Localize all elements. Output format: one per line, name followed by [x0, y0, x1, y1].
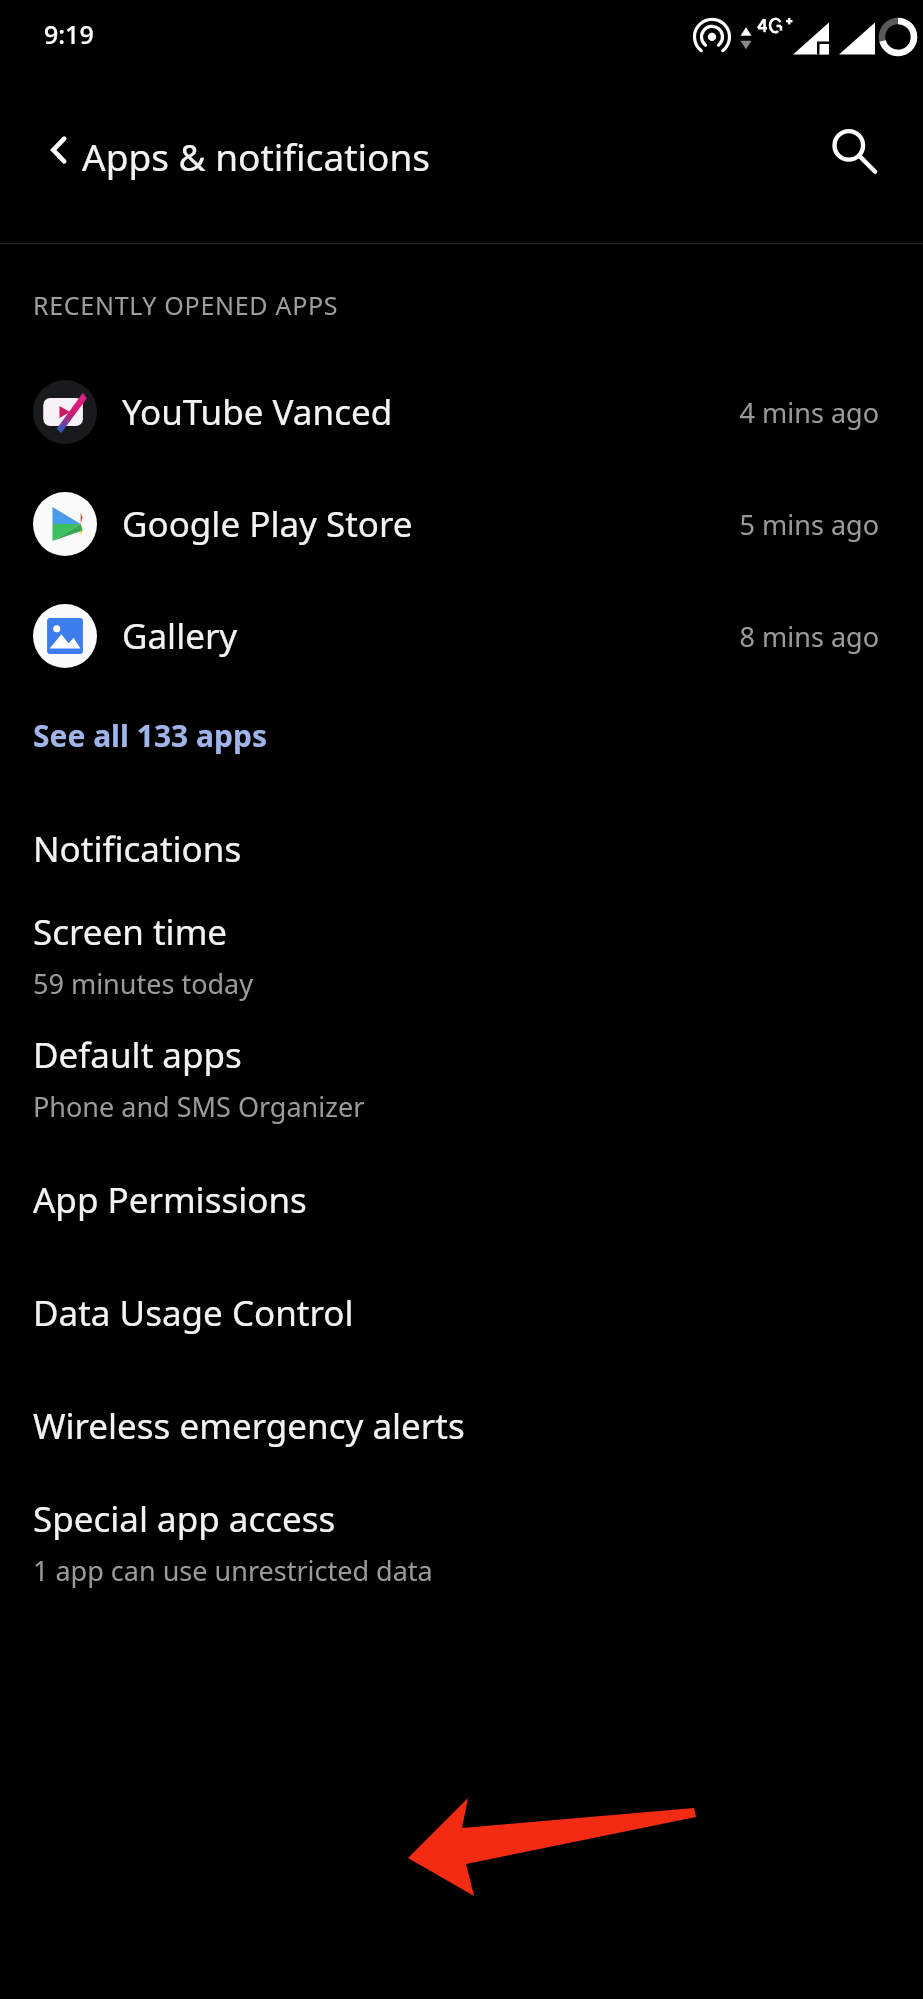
staticText: Phone and SMS Organizer — [33, 1088, 365, 1125]
button[interactable]: Back — [22, 112, 98, 188]
staticText: 59 minutes today — [33, 965, 254, 1002]
staticText: 9:19 — [44, 17, 94, 51]
staticText: 8 mins ago — [739, 618, 879, 655]
staticText: 4 mins ago — [739, 394, 879, 431]
staticText: 5 mins ago — [739, 506, 879, 543]
staticText: App Permissions — [33, 1176, 307, 1224]
button[interactable]: Wireless emergency alerts — [0, 1369, 923, 1482]
staticText: YouTube Vanced — [122, 388, 393, 436]
button[interactable]: Google Play Store — [0, 468, 923, 580]
staticText: Gallery — [122, 612, 238, 660]
button[interactable]: Gallery — [0, 580, 923, 692]
button[interactable]: Notifications — [0, 800, 923, 897]
staticText: See all 133 apps — [33, 715, 268, 756]
button[interactable]: Default apps — [0, 1012, 923, 1144]
button[interactable]: See all 133 apps — [33, 715, 268, 756]
staticText: Google Play Store — [122, 500, 413, 548]
button[interactable]: App Permissions — [0, 1144, 923, 1256]
button[interactable]: Data Usage Control — [0, 1256, 923, 1369]
staticText: Apps & notifications — [82, 131, 431, 181]
staticText: Data Usage Control — [33, 1289, 354, 1337]
staticText: Wireless emergency alerts — [33, 1402, 465, 1450]
staticText: Special app access — [33, 1495, 336, 1543]
button[interactable]: YouTube Vanced — [0, 356, 923, 468]
button[interactable]: Screen time — [0, 897, 923, 1012]
button[interactable]: Special app access — [0, 1482, 923, 1602]
staticText: Notifications — [33, 825, 242, 873]
button[interactable]: Search — [814, 112, 890, 188]
staticText: Screen time — [33, 908, 228, 956]
staticText: Default apps — [33, 1031, 242, 1079]
staticText: RECENTLY OPENED APPS — [33, 288, 339, 322]
staticText: 1 app can use unrestricted data — [33, 1552, 433, 1589]
